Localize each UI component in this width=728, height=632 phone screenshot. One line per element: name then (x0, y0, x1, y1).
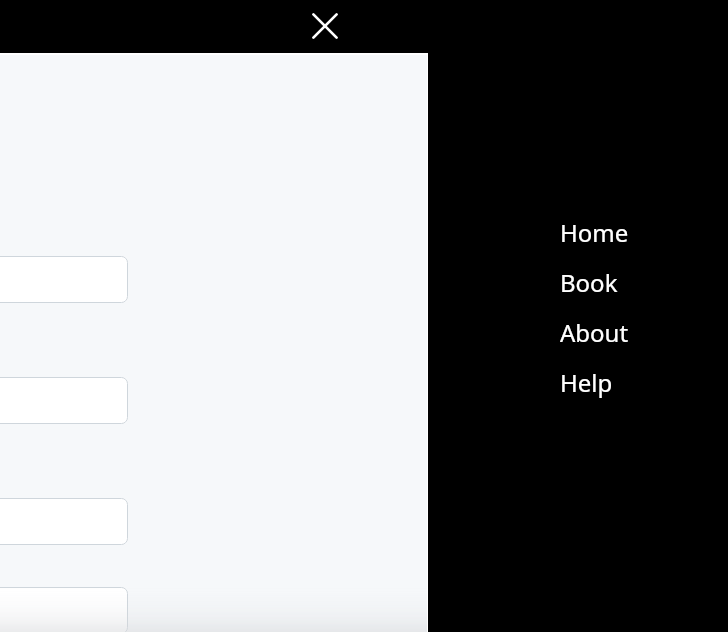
button[interactable]: List item (0, 256, 128, 303)
button[interactable]: About (560, 307, 700, 357)
staticText: About (560, 316, 629, 349)
button[interactable]: List item (0, 377, 128, 424)
button[interactable]: Home (560, 207, 700, 257)
button[interactable]: List item (0, 587, 128, 632)
button[interactable]: Book (560, 257, 700, 307)
staticText: Home (560, 216, 629, 249)
button[interactable]: Close menu (301, 2, 349, 50)
button[interactable]: List item (0, 498, 128, 545)
button[interactable]: Help (560, 357, 700, 407)
staticText: Help (560, 366, 613, 399)
staticText: Book (560, 266, 618, 299)
